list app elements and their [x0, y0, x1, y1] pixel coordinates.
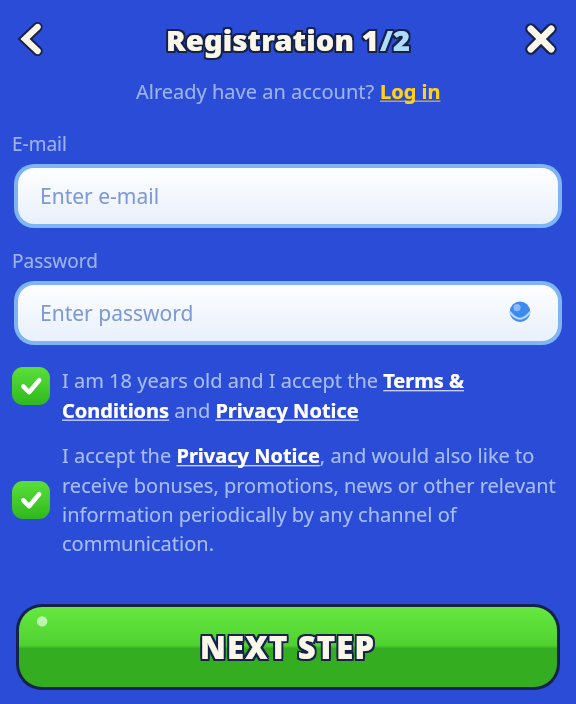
button[interactable]: NEXT STEP — [19, 607, 557, 687]
staticText: /2 — [378, 22, 409, 61]
staticText: NEXT STEP — [200, 626, 376, 668]
button[interactable]: Checked — [12, 367, 50, 405]
staticText: Registration 1 — [166, 18, 380, 57]
staticText: Registration 1 — [168, 22, 382, 61]
staticText: I am 18 years old and I accept the Terms… — [62, 367, 560, 424]
button[interactable]: Show password — [500, 293, 540, 333]
staticText: Registration 1 — [166, 22, 380, 61]
button[interactable]: Checked — [12, 481, 50, 519]
staticText: /2 — [382, 20, 413, 59]
staticText: /2 — [380, 18, 411, 57]
staticText: Log in — [380, 78, 441, 105]
staticText: NEXT STEP — [200, 628, 376, 670]
staticText: /2 — [380, 22, 411, 61]
staticText: Registration 1 — [164, 20, 378, 59]
button[interactable]: Enter password — [18, 285, 558, 341]
staticText: NEXT STEP — [198, 626, 374, 668]
button[interactable]: Log in — [380, 78, 441, 105]
button[interactable]: Checked — [12, 442, 560, 557]
button[interactable]: Checked — [12, 367, 560, 424]
staticText: Registration 1 — [168, 20, 382, 59]
staticText: /2 — [382, 18, 413, 57]
staticText: Password — [12, 248, 98, 274]
staticText: NEXT STEP — [202, 628, 378, 670]
staticText: /2 — [380, 20, 411, 59]
staticText: Enter password — [40, 299, 194, 328]
button[interactable]: Back — [2, 10, 60, 68]
staticText: /2 — [378, 18, 409, 57]
staticText: /2 — [382, 22, 413, 61]
staticText: Enter e-mail — [40, 182, 160, 211]
staticText: Registration 1 — [166, 20, 380, 59]
staticText: /2 — [378, 20, 409, 59]
staticText: NEXT STEP — [202, 624, 378, 666]
staticText: I accept the Privacy Notice, and would a… — [62, 442, 560, 557]
staticText: Registration 1 — [164, 22, 378, 61]
staticText: Registration 1 — [168, 18, 382, 57]
staticText: NEXT STEP — [202, 626, 378, 668]
staticText: Registration 1 — [164, 18, 378, 57]
staticText: Already have an account? — [136, 78, 380, 105]
button[interactable]: Enter e-mail — [18, 168, 558, 224]
staticText: NEXT STEP — [198, 624, 374, 666]
button[interactable]: Close — [512, 10, 570, 68]
staticText: NEXT STEP — [200, 624, 376, 666]
staticText: NEXT STEP — [198, 628, 374, 670]
staticText: E-mail — [12, 131, 67, 157]
